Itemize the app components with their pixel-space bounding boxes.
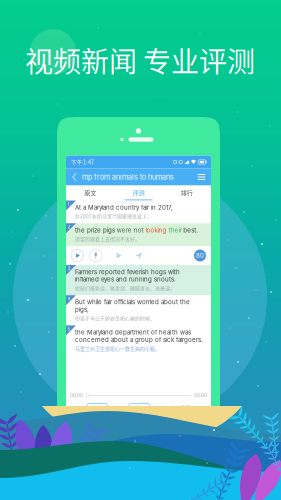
staticText: 80 xyxy=(196,252,204,259)
button[interactable]: Record xyxy=(89,249,102,262)
staticText: 合成 xyxy=(92,404,102,411)
staticText: looking xyxy=(146,226,167,234)
staticText: 得奖的猪看上去情况不太好。 xyxy=(75,235,140,242)
staticText: 5 xyxy=(68,326,71,332)
staticText: best. xyxy=(183,226,198,234)
staticText: their xyxy=(168,226,181,234)
staticText: 但是正当公正的官员担心猪的时候， xyxy=(75,315,155,322)
staticText: 视频新闻 专业评测 xyxy=(25,40,255,80)
button[interactable]: Share xyxy=(133,249,145,262)
staticText: 发布 xyxy=(134,404,144,411)
button[interactable]: Play xyxy=(71,249,83,262)
button[interactable]: 发布 xyxy=(128,403,150,412)
button[interactable]: 评测 xyxy=(114,185,163,200)
button[interactable]: But while fair officials worried about t… xyxy=(66,295,211,325)
staticText: At a Maryland country fair in 2017, xyxy=(75,204,173,211)
staticText: 3 xyxy=(68,266,71,271)
button[interactable]: Back xyxy=(67,168,82,185)
staticText: 00:00 xyxy=(194,393,207,398)
staticText: the Maryland department of health was co… xyxy=(75,329,203,343)
staticText: 00:00 xyxy=(70,393,83,398)
staticText: 马里兰州卫生部担心一群生病的小贩。 xyxy=(75,345,160,352)
staticText: 下午1:47 xyxy=(71,158,94,166)
button[interactable]: 排行 xyxy=(163,185,211,200)
button[interactable]: Menu xyxy=(194,168,209,185)
button[interactable]: 原文 xyxy=(66,185,114,200)
staticText: mp from animals to humans xyxy=(82,173,174,181)
staticText: 原文 xyxy=(84,188,96,197)
staticText: 在2007年的马里兰国家博览会上， xyxy=(75,212,152,220)
staticText: 评测 xyxy=(132,188,144,197)
staticText: 农民们报告说，猪发烧、眼睛发炎、流鼻涕。 xyxy=(75,284,175,292)
staticText: 4 xyxy=(68,296,71,302)
staticText: 2 xyxy=(68,224,71,230)
staticText: 排行 xyxy=(181,188,193,197)
staticText: were not xyxy=(117,226,144,234)
button[interactable]: the Maryland department of health was co… xyxy=(66,325,211,356)
staticText: 1 xyxy=(68,201,70,207)
staticText: Farmers reported feverish hogs with infl… xyxy=(75,268,180,283)
staticText: the prize pigs xyxy=(75,226,115,234)
button[interactable]: 合成 xyxy=(86,403,108,412)
button[interactable]: Farmers reported feverish hogs with infl… xyxy=(66,265,211,295)
button[interactable]: At a Maryland country fair in 2017, xyxy=(66,200,211,223)
staticText: 单句循环 xyxy=(171,404,191,411)
button[interactable]: Play recording xyxy=(113,249,125,262)
staticText: But while fair officials worried about t… xyxy=(75,298,190,313)
button[interactable]: the prize pigs xyxy=(66,223,211,246)
